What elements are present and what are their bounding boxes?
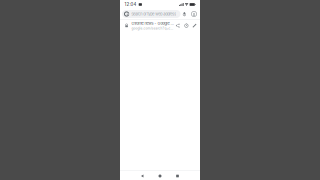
- button[interactable]: Search or type web address: [122, 10, 180, 18]
- button[interactable]: Home: [153, 171, 166, 180]
- button[interactable]: Voice search: [181, 10, 187, 18]
- staticText: 12:04: [124, 2, 136, 7]
- button[interactable]: Recent apps: [171, 171, 184, 180]
- button[interactable]: chrome news - Google Search: [120, 20, 200, 32]
- button[interactable]: Account: [191, 10, 197, 18]
- staticText: chrome news - Google Search: [131, 21, 175, 26]
- staticText: google.com/search?q=chrome+news: [131, 26, 175, 30]
- staticText: Search or type web address: [131, 12, 176, 16]
- button[interactable]: Back: [136, 171, 149, 180]
